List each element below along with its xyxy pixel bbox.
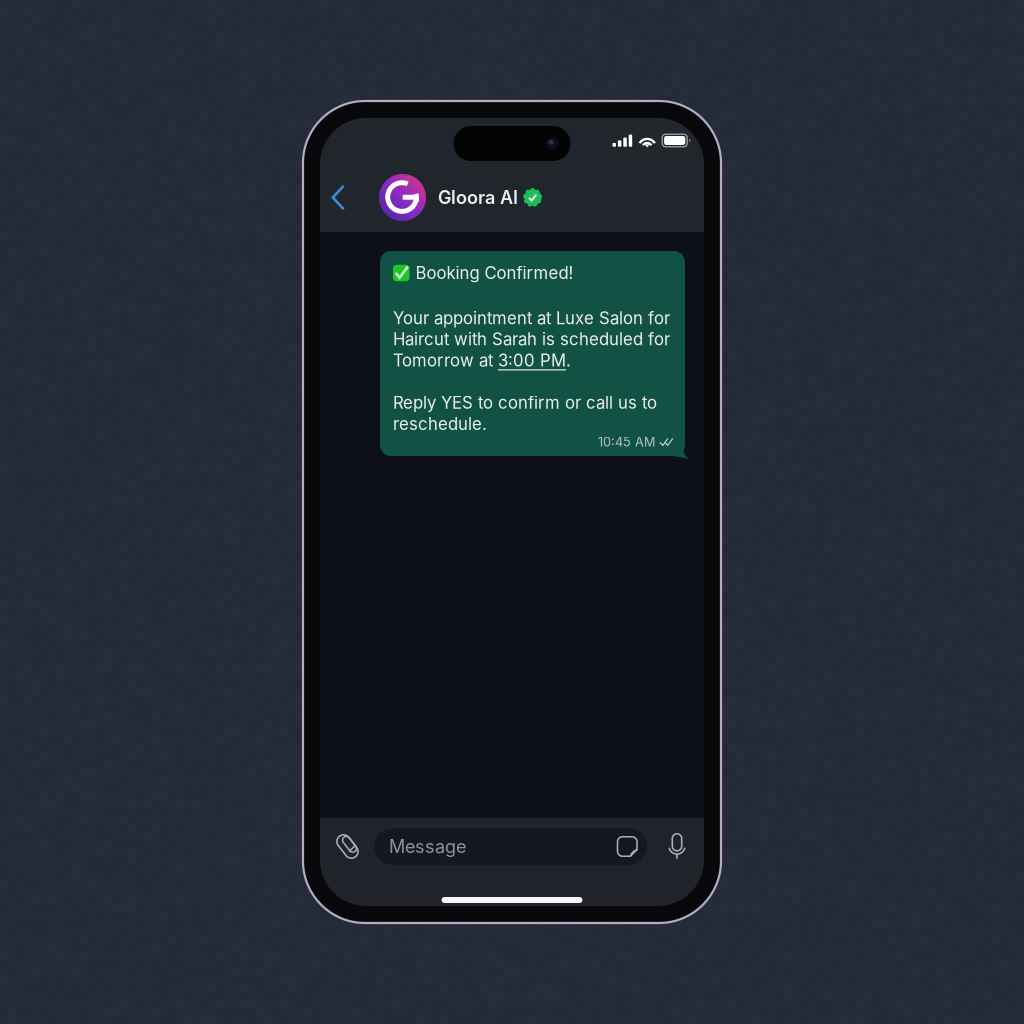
button[interactable]: Back <box>320 163 379 232</box>
staticText: 10:45 AM <box>598 434 655 450</box>
staticText: Message <box>389 836 466 857</box>
button[interactable]: Message <box>374 828 647 865</box>
staticText: Your appointment at Luxe Salon for Hairc… <box>393 308 670 434</box>
staticText: Gloora AI <box>438 187 518 208</box>
staticText: Booking Confirmed! <box>415 263 573 283</box>
button[interactable]: Record voice message <box>659 818 695 875</box>
button[interactable]: Attach <box>331 818 374 875</box>
button[interactable]: Gloora AI <box>379 163 704 232</box>
